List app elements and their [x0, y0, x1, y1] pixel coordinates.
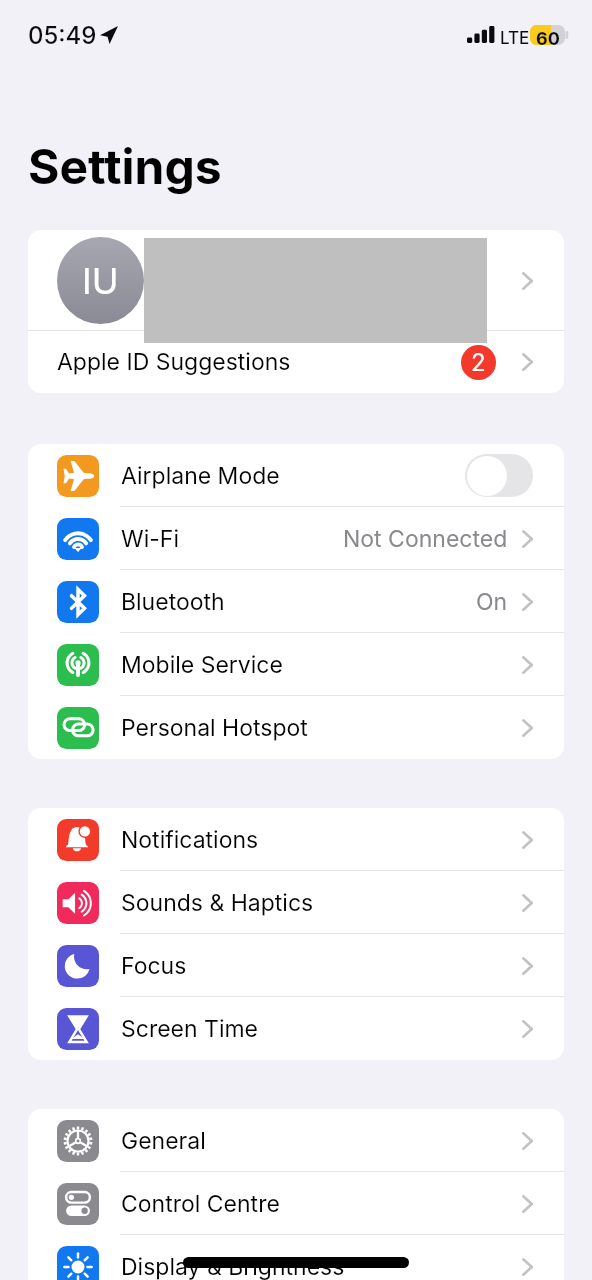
staticText: Control Centre — [121, 1190, 280, 1218]
staticText: 05:49 — [28, 21, 97, 50]
button[interactable]: General — [28, 1109, 564, 1172]
staticText: Screen Time — [121, 1015, 259, 1043]
button[interactable]: Sounds & Haptics — [28, 871, 564, 934]
button[interactable]: Control Centre — [28, 1172, 564, 1235]
staticText: On — [476, 588, 508, 616]
staticText: Mobile Service — [121, 651, 283, 679]
staticText: Bluetooth — [121, 588, 225, 616]
button[interactable]: Apple ID Suggestions — [28, 331, 564, 393]
staticText: Notifications — [121, 826, 259, 854]
staticText: General — [121, 1127, 206, 1155]
staticText: Not Connected — [343, 525, 508, 553]
staticText: 60 — [536, 28, 560, 50]
staticText: Personal Hotspot — [121, 714, 308, 742]
button[interactable]: Mobile Service — [28, 633, 564, 696]
button[interactable]: Personal Hotspot — [28, 696, 564, 759]
button[interactable]: Display & Brightness — [28, 1235, 564, 1280]
button[interactable]: Focus — [28, 934, 564, 997]
staticText: Sounds & Haptics — [121, 889, 314, 917]
staticText: Airplane Mode — [121, 462, 280, 490]
button[interactable]: IU — [28, 230, 564, 331]
staticText: Focus — [121, 952, 187, 980]
button[interactable]: Airplane Mode toggle — [465, 454, 533, 497]
staticText: Wi-Fi — [121, 525, 179, 553]
staticText: Settings — [28, 137, 222, 195]
button[interactable]: Bluetooth — [28, 570, 564, 633]
staticText: IU — [82, 259, 119, 303]
button[interactable]: Notifications — [28, 808, 564, 871]
staticText: Apple ID Suggestions — [57, 348, 291, 376]
staticText: 2 — [471, 348, 486, 377]
staticText: LTE — [500, 28, 530, 49]
button[interactable]: Airplane Mode — [28, 444, 564, 507]
button[interactable]: Screen Time — [28, 997, 564, 1060]
staticText: Display & Brightness — [121, 1253, 345, 1280]
button[interactable]: Wi-Fi — [28, 507, 564, 570]
